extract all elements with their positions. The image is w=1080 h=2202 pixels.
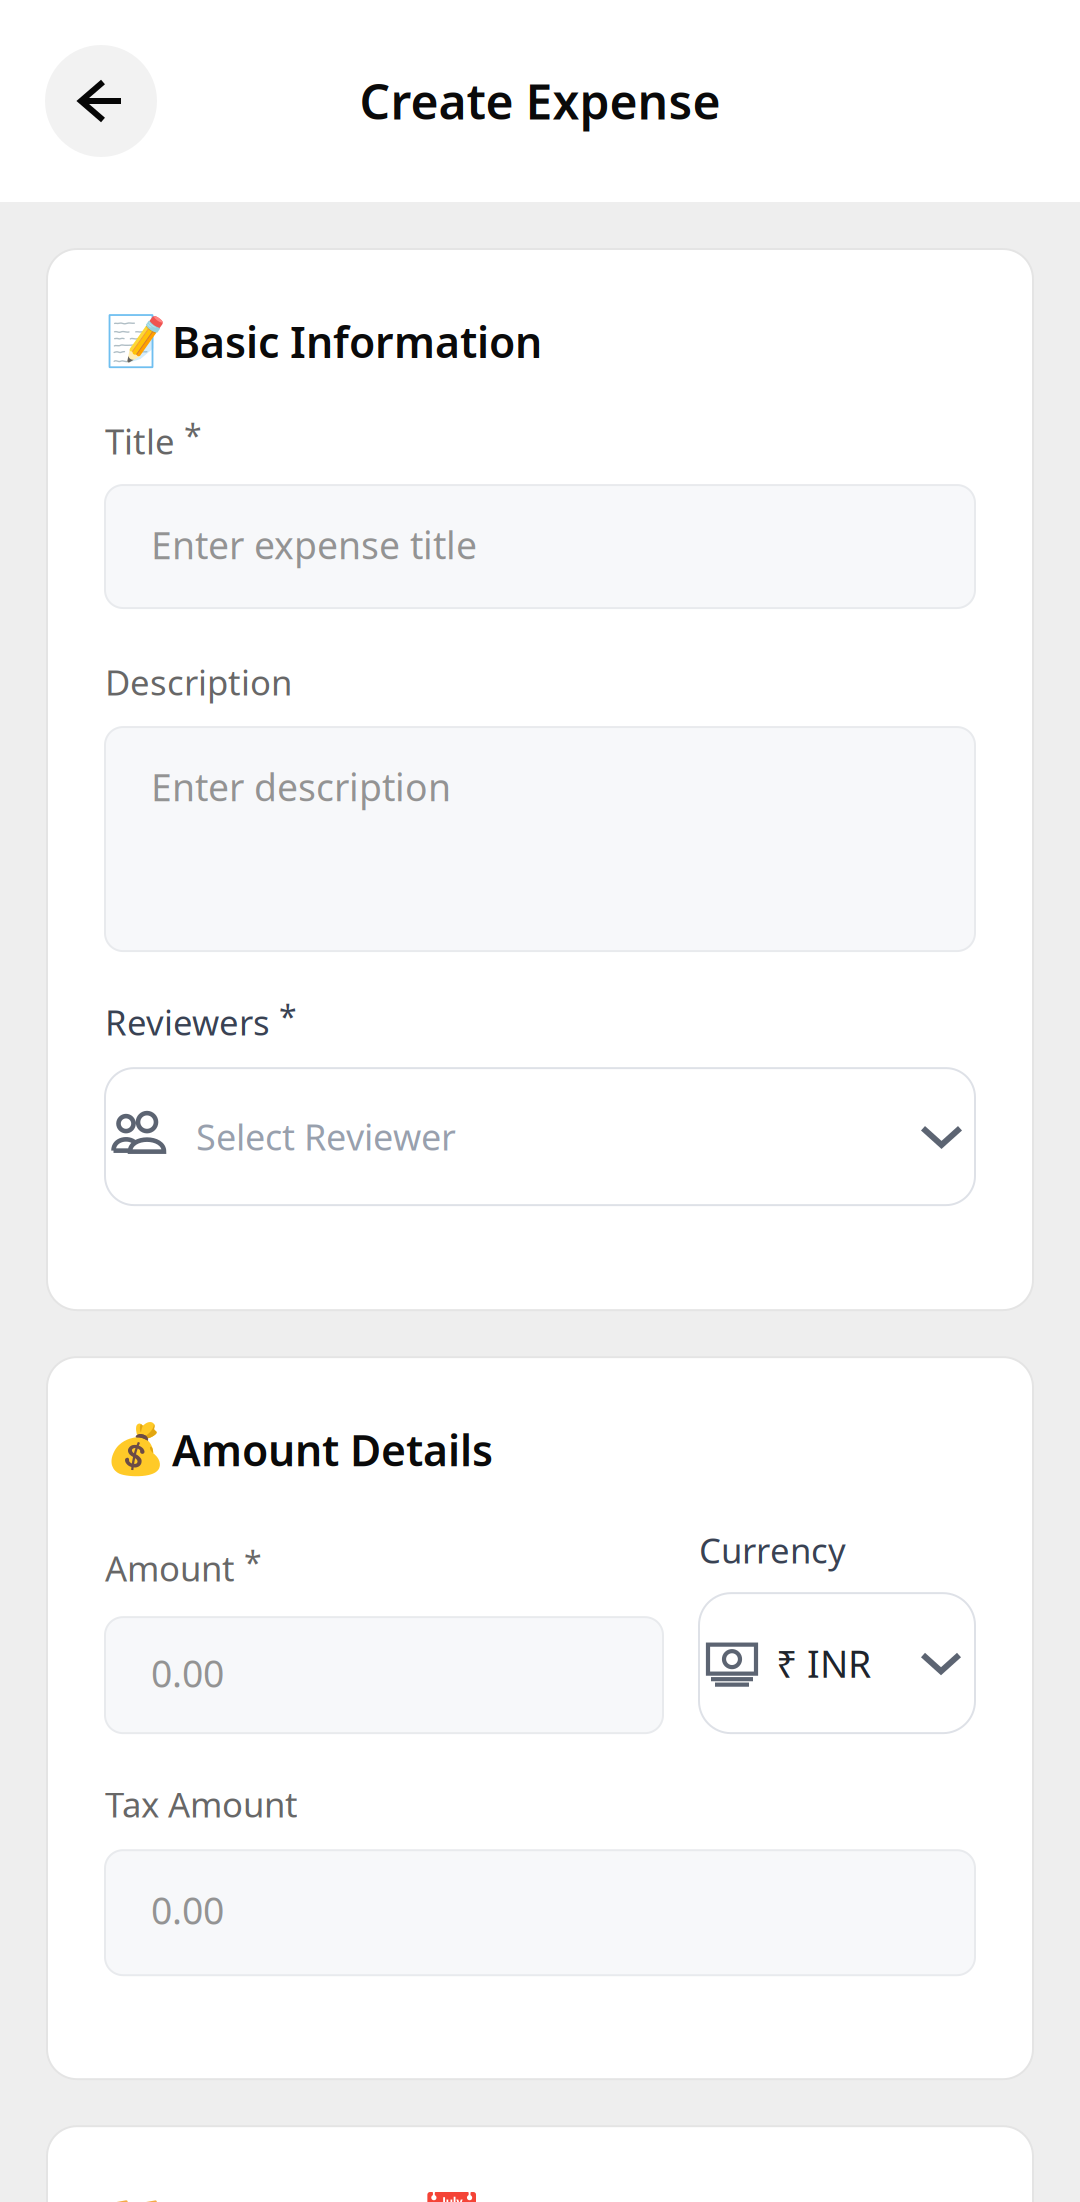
staticText: Select Reviewer	[196, 1113, 456, 1160]
staticText: Create Expense	[359, 69, 720, 133]
staticText: Enter description	[151, 762, 451, 812]
staticText: 📅	[421, 2190, 482, 2202]
staticText: *	[184, 414, 202, 456]
staticText: 💰	[105, 1421, 166, 1478]
staticText: ₹ INR	[776, 1638, 871, 1688]
staticText: Enter expense title	[151, 520, 477, 570]
button[interactable]: ₹ INR	[699, 1593, 975, 1733]
staticText: Reviewers	[105, 999, 270, 1045]
staticText: 📁	[105, 2190, 166, 2202]
button[interactable]: Back	[45, 45, 157, 157]
staticText: Currency	[699, 1527, 846, 1573]
staticText: Title	[105, 418, 175, 464]
staticText: *	[244, 1541, 262, 1584]
staticText: Description	[105, 659, 292, 705]
staticText: Basic Information	[172, 313, 542, 370]
staticText: 0.00	[151, 1648, 224, 1698]
staticText: Amount Details	[172, 1421, 493, 1478]
staticText: Tax Amount	[105, 1781, 298, 1827]
staticText: Amount	[105, 1545, 235, 1591]
staticText: 📝	[105, 313, 166, 370]
staticText: 0.00	[151, 1885, 224, 1935]
staticText: *	[279, 995, 297, 1038]
button[interactable]: Select Reviewer	[105, 1068, 975, 1205]
